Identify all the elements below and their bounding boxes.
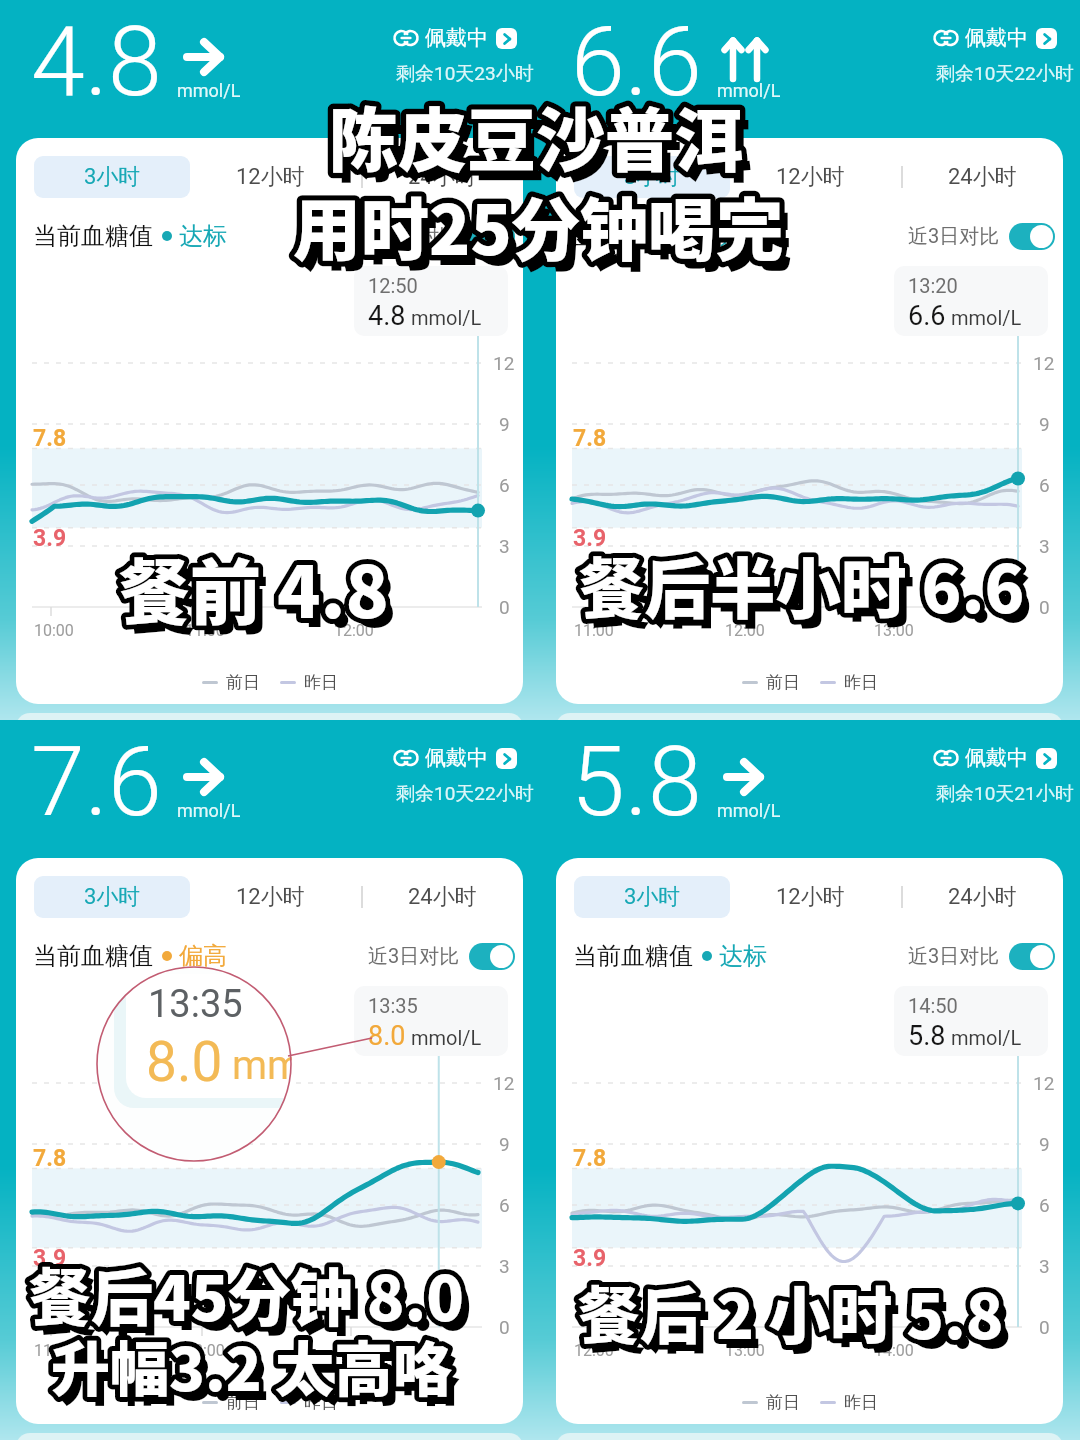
button[interactable]: 3小时 [34,876,190,918]
staticText: 3小时 [84,883,141,911]
staticText: 6.6 [571,5,702,119]
staticText: 9 [1039,1133,1050,1155]
staticText: 12小时 [236,883,305,911]
button[interactable]: 24小时 [912,156,1052,198]
staticText: 4.8 [31,5,162,119]
button[interactable]: 12小时 [730,156,890,198]
staticText: 剩余10天21小时 [936,782,1074,806]
staticText: 3 [499,535,510,557]
staticText: 8.0 [368,1020,406,1052]
staticText: 6.6 [908,300,946,332]
button[interactable]: 近3日对比 [908,220,1055,252]
staticText: mmol/L [177,800,241,821]
staticText: 24小时 [948,883,1017,911]
button[interactable]: 3小时 [574,876,730,918]
button[interactable]: 佩戴中,查看设备 [934,743,1057,773]
staticText: 3 [1039,535,1050,557]
button[interactable]: 近3日对比 [908,940,1055,972]
button[interactable]: 佩戴中,查看设备 [394,23,517,53]
staticText: mmol/L [717,80,781,101]
staticText: 前日 [226,1392,260,1413]
button[interactable]: 12小时 [190,156,350,198]
staticText: mmol/L [951,306,1022,329]
staticText: 6 [1039,1194,1050,1216]
staticText: 佩戴中 [425,745,488,771]
button[interactable]: 近3日对比 [368,220,515,252]
button[interactable]: 佩戴中,查看设备 [394,743,517,773]
staticText: 7.6 [31,725,162,839]
staticText: 0 [1039,1316,1050,1338]
staticText: 剩余10天22小时 [936,62,1074,86]
staticText: 12 [493,352,515,374]
button[interactable]: 12小时 [190,876,350,918]
staticText: 3 [1039,1255,1050,1277]
staticText: 7.8 [573,1145,607,1172]
staticText: 4.8 [368,300,406,332]
staticText: 6 [1039,474,1050,496]
staticText: 0 [499,1316,510,1338]
staticText: 13:00 [725,1341,765,1360]
staticText: 达标 [719,941,767,971]
staticText: 达标 [719,221,767,251]
staticText: 13:35 [368,994,418,1017]
button[interactable]: 近3日对比 [368,940,515,972]
staticText: 12:00 [185,1341,225,1360]
staticText: 9 [499,413,510,435]
staticText: 12:00 [725,621,765,640]
button[interactable]: 24小时 [912,876,1052,918]
staticText: 佩戴中 [965,25,1028,51]
staticText: 24小时 [408,883,477,911]
staticText: 10:00 [34,621,74,640]
staticText: 3.9 [33,525,67,552]
staticText: 13:35 [148,982,243,1027]
staticText: 12 [1033,352,1055,374]
staticText: 12 [493,1072,515,1094]
staticText: 5.8 [908,1020,946,1052]
staticText: 11:00 [574,621,614,640]
staticText: 当前血糖值 [33,941,153,971]
staticText: 9 [1039,413,1050,435]
staticText: 13:00 [334,1341,374,1360]
staticText: 24小时 [948,163,1017,191]
staticText: 5.8 [571,725,702,839]
staticText: 3小时 [84,163,141,191]
staticText: 0 [1039,596,1050,618]
staticText: 13:20 [908,274,958,297]
staticText: 12:00 [334,621,374,640]
staticText: 7.8 [33,425,67,452]
staticText: 当前血糖值 [573,941,693,971]
staticText: mmol/L [411,306,482,329]
staticText: 7.8 [33,1145,67,1172]
staticText: 6 [499,1194,510,1216]
staticText: 12小时 [776,163,845,191]
staticText: 偏高 [179,941,227,971]
staticText: 当前血糖值 [573,221,693,251]
staticText: 14:50 [908,994,958,1017]
staticText: 前日 [766,672,800,693]
staticText: 3小时 [624,883,681,911]
button[interactable]: 3小时 [574,156,730,198]
staticText: 12:50 [368,274,418,297]
staticText: 0 [499,596,510,618]
staticText: 佩戴中 [425,25,488,51]
staticText: mmol/L [717,800,781,821]
staticText: 近3日对比 [368,224,460,249]
staticText: 3小时 [624,163,681,191]
staticText: 3.9 [573,1245,607,1272]
staticText: 昨日 [304,1392,338,1413]
staticText: 11:00 [34,1341,74,1360]
button[interactable]: 12小时 [730,876,890,918]
staticText: mmol/L [951,1026,1022,1049]
staticText: 7.8 [573,425,607,452]
button[interactable]: 24小时 [372,156,512,198]
button[interactable]: 佩戴中,查看设备 [934,23,1057,53]
button[interactable]: 3小时 [34,156,190,198]
staticText: 3.9 [33,1245,67,1272]
staticText: 12 [1033,1072,1055,1094]
staticText: 近3日对比 [908,944,1000,969]
staticText: 12小时 [236,163,305,191]
staticText: mmol/L [411,1026,482,1049]
button[interactable]: 24小时 [372,876,512,918]
staticText: 近3日对比 [368,944,460,969]
staticText: 前日 [766,1392,800,1413]
